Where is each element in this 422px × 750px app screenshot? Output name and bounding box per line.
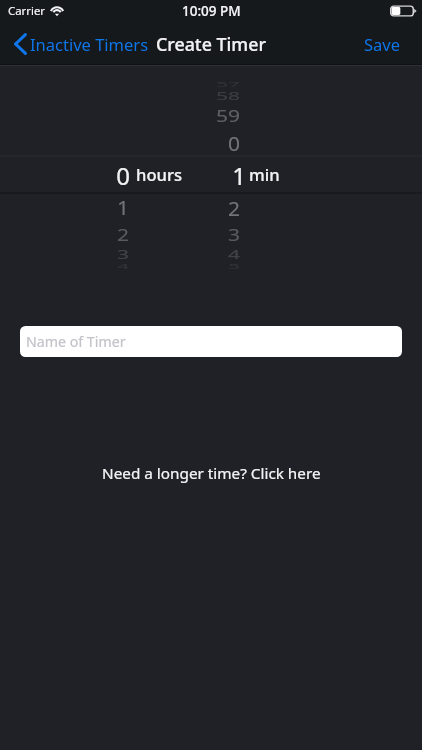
staticText: Name of Timer [26, 332, 126, 351]
staticText: Carrier [8, 3, 46, 19]
staticText: 4 [116, 261, 129, 271]
button[interactable]: Name of Timer [20, 326, 402, 357]
staticText: 2 [227, 195, 240, 222]
staticText: Inactive Timers [30, 33, 149, 55]
button[interactable]: Need a longer time? Click here [0, 462, 422, 484]
staticText: Create Timer [156, 32, 266, 56]
other: Battery level [390, 5, 417, 17]
staticText: 0 [116, 159, 130, 192]
staticText: 59 [215, 105, 240, 127]
button[interactable]: Inactive Timers [14, 33, 149, 55]
staticText: 58 [215, 89, 240, 104]
button[interactable]: Minutes wheel [211, 67, 422, 285]
staticText: 0 [227, 130, 240, 157]
staticText: 2 [116, 224, 129, 247]
staticText: Need a longer time? Click here [102, 463, 321, 484]
staticText: 4 [227, 247, 240, 263]
staticText: 57 [215, 79, 240, 89]
button[interactable]: Hours wheel [0, 67, 211, 285]
staticText: hours [136, 163, 183, 186]
staticText: 3 [227, 224, 240, 247]
staticText: 3 [116, 247, 129, 263]
staticText: Save [364, 33, 401, 55]
staticText: min [249, 163, 280, 186]
button[interactable]: Save [364, 33, 401, 55]
staticText: 10:09 PM [182, 2, 241, 20]
staticText: 1 [116, 194, 129, 221]
other: Wi-Fi signal [49, 5, 65, 17]
staticText: 1 [232, 159, 246, 192]
staticText: 5 [227, 261, 240, 271]
